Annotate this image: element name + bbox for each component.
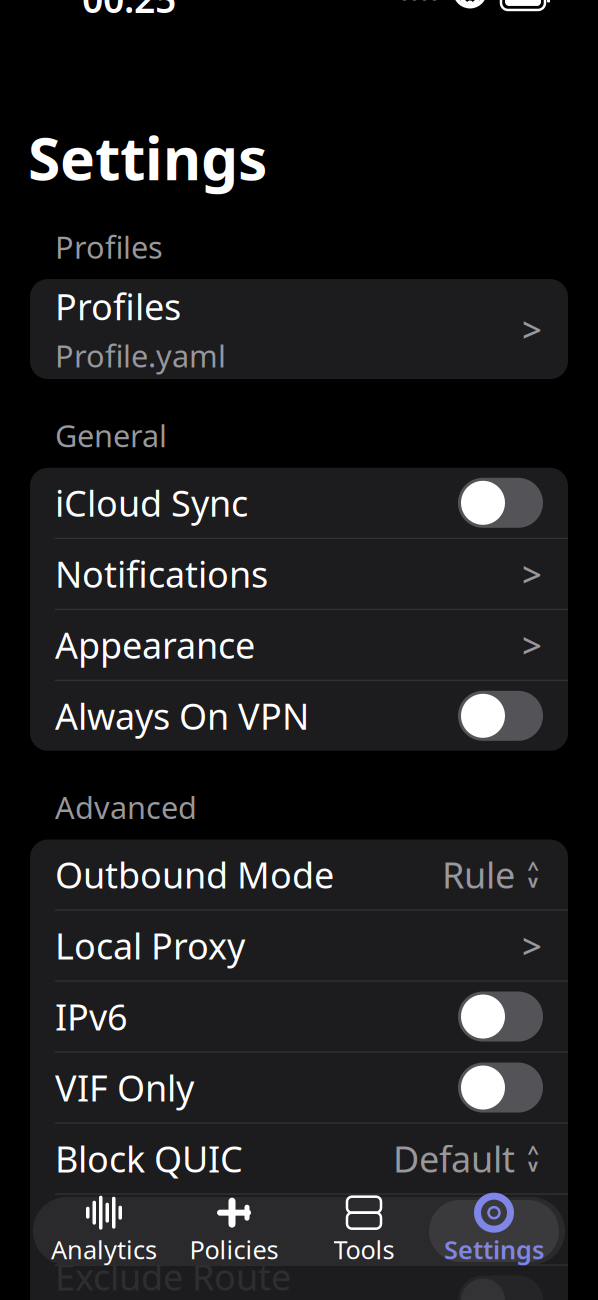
staticText: Exclude Route 0.0.0.0/31: [55, 1253, 291, 1300]
staticText: Settings: [444, 1233, 544, 1266]
button[interactable]: Notifications: [30, 539, 568, 609]
staticText: Block QUIC: [55, 1135, 243, 1182]
staticText: Policies: [189, 1233, 278, 1266]
button[interactable]: Analytics: [39, 1200, 169, 1262]
staticText: ^: [527, 1139, 538, 1165]
staticText: Analytics: [51, 1233, 157, 1266]
staticText: >: [522, 922, 542, 968]
staticText: IPv6: [55, 993, 128, 1040]
button[interactable]: Local Proxy: [30, 910, 568, 980]
staticText: >: [522, 306, 542, 352]
button[interactable]: Block QUIC: [30, 1123, 568, 1193]
staticText: Settings: [28, 118, 267, 196]
button[interactable]: Exclude Route 0.0.0.0/31: [30, 1265, 568, 1300]
staticText: Rule: [442, 851, 515, 898]
button[interactable]: Outbound Mode: [30, 839, 568, 909]
staticText: >: [522, 622, 542, 668]
staticText: Profiles: [55, 282, 181, 330]
staticText: Bypass Tunnel Tox): [55, 1206, 371, 1253]
staticText: Advanced: [55, 787, 197, 827]
button[interactable]: Profiles: [30, 279, 568, 379]
staticText: Default: [393, 1135, 515, 1182]
button[interactable]: Always On VPN: [30, 681, 568, 751]
staticText: 00:25: [82, 0, 176, 23]
staticText: Profiles: [55, 226, 163, 267]
staticText: Local Proxy: [55, 922, 245, 969]
staticText: VIF Only: [55, 1064, 194, 1111]
staticText: Notifications: [55, 550, 268, 598]
staticText: Profile.yaml: [55, 335, 226, 376]
staticText: v: [528, 869, 538, 892]
button[interactable]: Tools: [299, 1200, 429, 1262]
staticText: iCloud Sync: [55, 479, 248, 527]
staticText: General: [55, 415, 167, 456]
button[interactable]: VIF Only: [30, 1052, 568, 1122]
button[interactable]: IPv6: [30, 981, 568, 1051]
button[interactable]: iCloud Sync: [30, 468, 568, 538]
staticText: Tools: [333, 1233, 394, 1266]
staticText: Always On VPN: [55, 692, 309, 740]
button[interactable]: Settings: [429, 1200, 559, 1262]
staticText: >: [522, 551, 542, 597]
button[interactable]: Appearance: [30, 610, 568, 680]
staticText: ^: [527, 855, 538, 881]
staticText: v: [528, 1153, 538, 1176]
button[interactable]: Policies: [169, 1200, 299, 1262]
button[interactable]: Bypass Tunnel Tox): [30, 1194, 568, 1264]
staticText: Outbound Mode: [55, 851, 334, 898]
staticText: Appearance: [55, 621, 255, 669]
